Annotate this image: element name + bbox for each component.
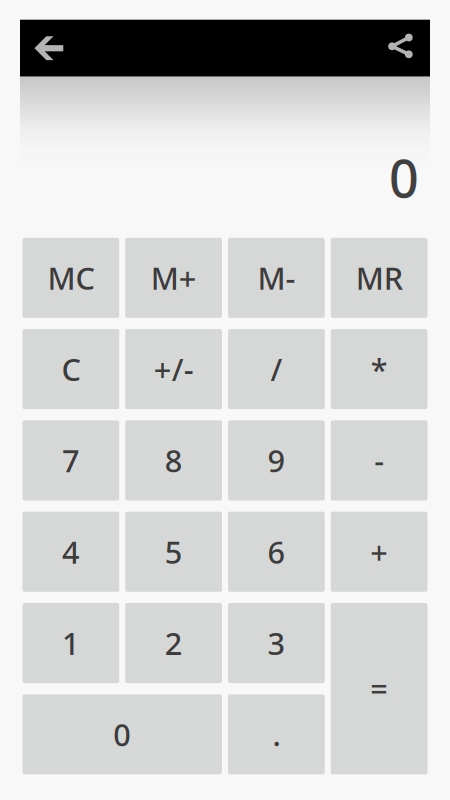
button[interactable]: 6 (228, 512, 325, 592)
staticText: +/- (154, 349, 194, 389)
staticText: / (270, 349, 282, 389)
button[interactable]: * (331, 329, 428, 409)
button[interactable]: = (331, 603, 428, 774)
button[interactable]: C (22, 329, 119, 409)
button[interactable]: . (228, 694, 325, 774)
staticText: 7 (62, 440, 80, 481)
staticText: 0 (389, 143, 419, 212)
staticText: 0 (113, 714, 131, 755)
staticText: 1 (62, 623, 80, 663)
button[interactable]: 7 (22, 420, 119, 500)
button[interactable]: - (331, 420, 428, 500)
staticText: MC (47, 257, 94, 298)
button[interactable]: MR (331, 238, 428, 318)
staticText: 6 (267, 531, 285, 572)
staticText: - (374, 440, 384, 481)
button[interactable]: 2 (125, 603, 222, 683)
staticText: 9 (267, 440, 285, 481)
staticText: 5 (165, 531, 183, 572)
button[interactable]: M- (228, 238, 325, 318)
button[interactable]: 9 (228, 420, 325, 500)
button[interactable]: 0 (22, 694, 222, 774)
staticText: = (370, 668, 388, 709)
staticText: + (370, 531, 388, 572)
staticText: . (272, 714, 280, 755)
staticText: M+ (151, 257, 197, 298)
staticText: M- (257, 257, 295, 298)
button[interactable]: 1 (22, 603, 119, 683)
button[interactable]: 8 (125, 420, 222, 500)
button[interactable]: 5 (125, 512, 222, 592)
button[interactable]: MC (22, 238, 119, 318)
button[interactable]: / (228, 329, 325, 409)
staticText: * (371, 349, 388, 389)
staticText: C (61, 349, 80, 389)
staticText: MR (356, 257, 403, 298)
button[interactable]: + (331, 512, 428, 592)
button[interactable]: 4 (22, 512, 119, 592)
button[interactable]: +/- (125, 329, 222, 409)
button[interactable]: Share (372, 20, 428, 77)
staticText: 3 (267, 623, 285, 663)
staticText: 8 (165, 440, 183, 481)
button[interactable]: M+ (125, 238, 222, 318)
staticText: 4 (62, 531, 80, 572)
button[interactable]: 3 (228, 603, 325, 683)
staticText: 2 (165, 623, 183, 663)
button[interactable]: Back (21, 20, 77, 77)
